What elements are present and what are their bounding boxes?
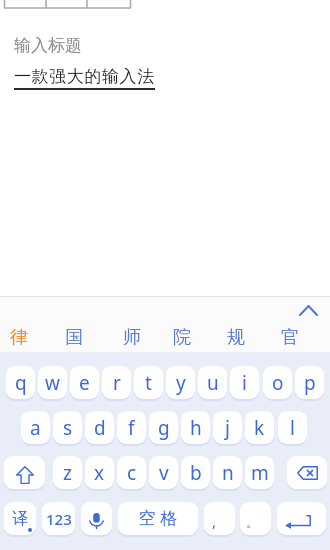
- staticText: p: [304, 370, 316, 396]
- staticText: 院: [173, 326, 191, 349]
- staticText: g: [158, 415, 170, 441]
- staticText: 123: [46, 509, 72, 529]
- button[interactable]: r: [102, 366, 131, 399]
- staticText: 空格: [136, 508, 180, 529]
- staticText: l: [290, 415, 295, 441]
- staticText: e: [79, 370, 90, 396]
- staticText: 律: [10, 326, 28, 349]
- button[interactable]: 师: [118, 324, 146, 350]
- button[interactable]: y: [166, 366, 195, 399]
- button[interactable]: a: [21, 411, 50, 444]
- staticText: ,: [212, 511, 217, 531]
- button[interactable]: u: [198, 366, 227, 399]
- button[interactable]: x: [85, 456, 114, 489]
- staticText: m: [251, 460, 269, 486]
- button[interactable]: 规: [222, 324, 250, 350]
- staticText: a: [30, 415, 41, 441]
- button[interactable]: l: [278, 411, 307, 444]
- staticText: x: [94, 460, 105, 486]
- staticText: 规: [227, 326, 245, 349]
- staticText: s: [63, 415, 73, 441]
- staticText: u: [207, 370, 219, 396]
- button[interactable]: t: [134, 366, 163, 399]
- button[interactable]: w: [38, 366, 67, 399]
- staticText: w: [45, 370, 60, 396]
- button[interactable]: [4, 456, 45, 489]
- button[interactable]: s: [53, 411, 82, 444]
- button[interactable]: [294, 300, 322, 320]
- staticText: y: [176, 370, 186, 396]
- staticText: v: [159, 460, 169, 486]
- button[interactable]: q: [6, 366, 35, 399]
- button[interactable]: d: [85, 411, 114, 444]
- staticText: z: [63, 460, 72, 486]
- staticText: d: [94, 415, 106, 441]
- button[interactable]: [287, 456, 327, 489]
- button[interactable]: 国: [60, 324, 88, 350]
- button[interactable]: 官: [276, 324, 304, 350]
- staticText: i: [242, 370, 247, 396]
- button[interactable]: 。: [240, 502, 271, 535]
- button[interactable]: 123: [42, 502, 75, 535]
- staticText: t: [145, 370, 152, 396]
- staticText: n: [222, 460, 234, 486]
- button[interactable]: b: [181, 456, 210, 489]
- button[interactable]: j: [213, 411, 242, 444]
- staticText: 。: [246, 514, 259, 530]
- button[interactable]: f: [117, 411, 146, 444]
- staticText: 一款强大的输入法: [14, 66, 155, 87]
- staticText: r: [113, 370, 121, 396]
- button[interactable]: c: [117, 456, 146, 489]
- button[interactable]: p: [295, 366, 324, 399]
- button[interactable]: [81, 502, 112, 535]
- button[interactable]: g: [149, 411, 178, 444]
- button[interactable]: n: [213, 456, 242, 489]
- staticText: 国: [65, 326, 83, 349]
- staticText: h: [190, 415, 202, 441]
- button[interactable]: z: [53, 456, 82, 489]
- button[interactable]: 译: [4, 502, 36, 535]
- staticText: 官: [281, 326, 299, 349]
- button[interactable]: e: [70, 366, 99, 399]
- staticText: c: [127, 460, 137, 486]
- staticText: 译: [12, 509, 28, 529]
- staticText: f: [128, 415, 135, 441]
- staticText: b: [190, 460, 202, 486]
- button[interactable]: v: [149, 456, 178, 489]
- button[interactable]: h: [181, 411, 210, 444]
- button[interactable]: 空格: [118, 502, 198, 535]
- staticText: 输入标题: [14, 35, 82, 56]
- button[interactable]: m: [245, 456, 274, 489]
- button[interactable]: k: [245, 411, 274, 444]
- button[interactable]: o: [263, 366, 292, 399]
- button[interactable]: [277, 502, 326, 535]
- button[interactable]: 院: [168, 324, 196, 350]
- staticText: k: [254, 415, 265, 441]
- staticText: 师: [123, 326, 141, 349]
- button[interactable]: i: [230, 366, 259, 399]
- staticText: j: [225, 415, 230, 441]
- staticText: o: [272, 370, 284, 396]
- button[interactable]: 律: [5, 324, 33, 350]
- button[interactable]: ,: [204, 502, 235, 535]
- staticText: q: [15, 370, 27, 396]
